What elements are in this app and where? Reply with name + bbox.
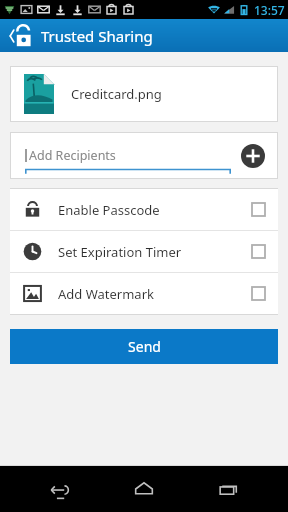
staticText: 13:57 bbox=[254, 2, 285, 18]
button[interactable]: Back bbox=[33, 466, 85, 512]
staticText: Add Watermark bbox=[58, 285, 154, 303]
staticText: Add Recipients bbox=[29, 147, 116, 164]
button[interactable]: Add Watermark bbox=[10, 273, 278, 314]
staticText: Creditcard.png bbox=[71, 85, 162, 103]
button[interactable]: Add recipient bbox=[240, 143, 266, 169]
button[interactable]: Enable Passcode bbox=[10, 189, 278, 230]
button[interactable]: Set Expiration Timer bbox=[10, 231, 278, 272]
button[interactable]: Home bbox=[118, 466, 170, 512]
button[interactable]: Add Recipients bbox=[25, 133, 231, 178]
button[interactable]: Recent apps bbox=[203, 466, 255, 512]
staticText: Set Expiration Timer bbox=[58, 243, 182, 261]
button[interactable]: Send bbox=[10, 329, 278, 364]
staticText: Send bbox=[128, 337, 161, 356]
staticText: Trusted Sharing bbox=[41, 26, 153, 46]
button[interactable]: Creditcard.png bbox=[24, 67, 277, 121]
button[interactable]: Navigate up bbox=[4, 19, 38, 52]
staticText: Enable Passcode bbox=[58, 201, 160, 219]
